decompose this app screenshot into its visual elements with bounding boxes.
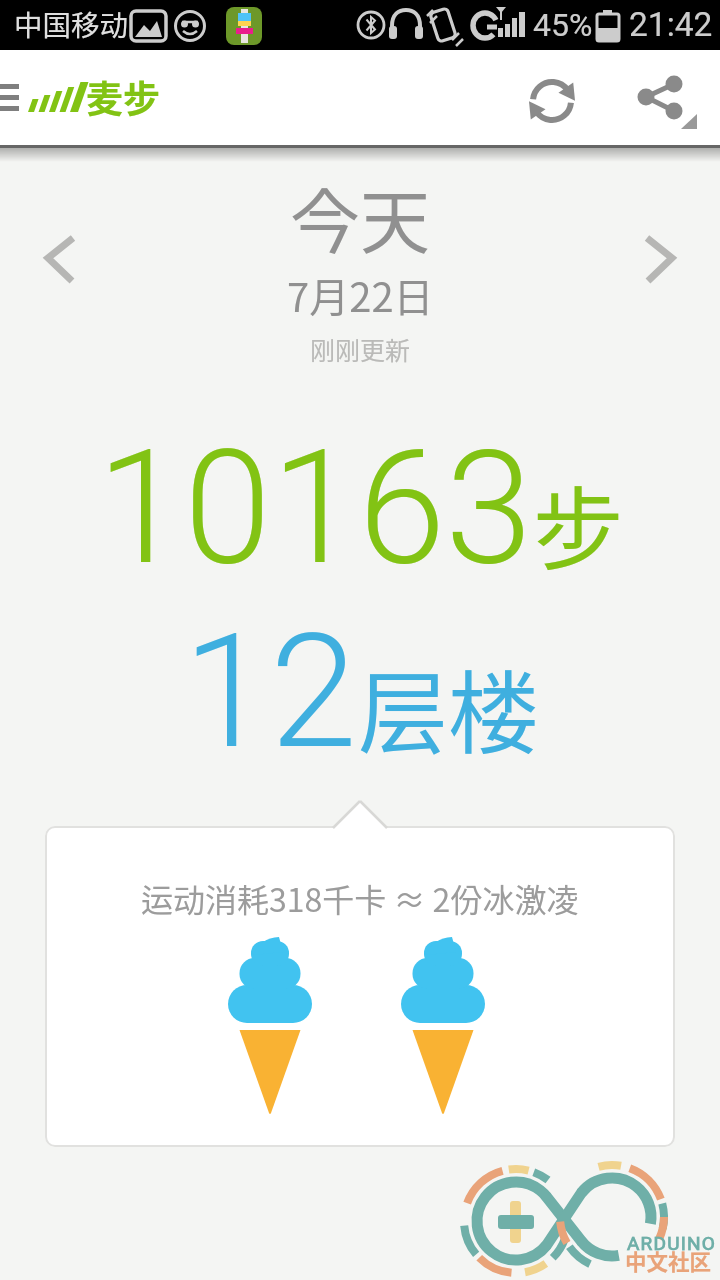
staticText: 21:42 xyxy=(629,5,713,44)
staticText: 7月22日 xyxy=(287,266,434,324)
staticText: 10163 xyxy=(97,416,533,600)
staticText: ARDUINO xyxy=(627,1232,717,1254)
staticText: 层楼 xyxy=(358,642,538,772)
staticText: 今天 xyxy=(290,167,430,268)
staticText: 45% xyxy=(533,6,593,44)
staticText: 中国移动 xyxy=(14,3,129,44)
staticText: 12 xyxy=(183,600,358,784)
staticText: 中文社区 xyxy=(625,1245,712,1276)
staticText: 麦步 xyxy=(86,70,160,124)
staticText: 步 xyxy=(533,458,623,588)
staticText: 运动消耗318千卡 ≈ 2份冰激凌 xyxy=(141,875,579,921)
staticText: 刚刚更新 xyxy=(310,331,411,367)
